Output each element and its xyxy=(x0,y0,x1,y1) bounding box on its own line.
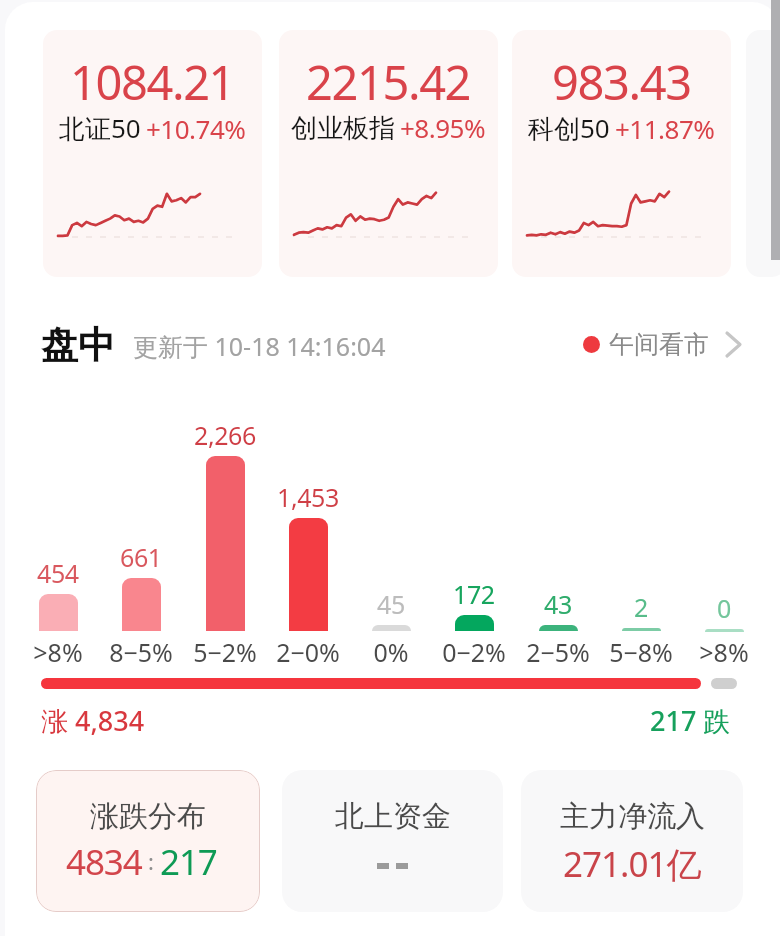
staticText: >8% xyxy=(16,635,100,669)
staticText: : xyxy=(148,846,154,876)
staticText: 45 xyxy=(377,587,405,621)
button[interactable]: 983.43 xyxy=(512,30,731,277)
staticText: 454 xyxy=(37,556,79,590)
staticText: 科创50 xyxy=(528,110,610,146)
staticText: 217 xyxy=(160,838,217,886)
staticText: +10.74% xyxy=(146,111,246,146)
staticText: 涨跌分布 xyxy=(90,798,206,835)
button[interactable]: 涨跌分布 xyxy=(36,770,260,912)
staticText: 4834 xyxy=(66,838,142,886)
staticText: 5−2% xyxy=(183,635,267,669)
button[interactable]: 午间看市 xyxy=(583,329,741,360)
staticText: 1084.21 xyxy=(70,50,235,114)
staticText: 主力净流入 xyxy=(560,798,705,835)
staticText: 43 xyxy=(544,587,572,621)
staticText: 0 xyxy=(717,591,731,625)
staticText: 北证50 xyxy=(59,110,141,146)
staticText: 172 xyxy=(453,577,495,611)
staticText: 217 跌 xyxy=(650,702,731,739)
staticText: 1,453 xyxy=(277,480,339,514)
staticText: 983.43 xyxy=(552,50,691,114)
staticText: 2215.42 xyxy=(306,50,471,114)
button[interactable]: 1084.21 xyxy=(43,30,262,277)
staticText: >8% xyxy=(682,635,766,669)
staticText: 2−5% xyxy=(516,635,600,669)
staticText: 2,266 xyxy=(194,418,256,452)
staticText: 2 xyxy=(634,590,648,624)
staticText: 更新于 10-18 14:16:04 xyxy=(133,329,386,363)
staticText: 0% xyxy=(349,635,433,669)
button[interactable]: 2215.42 xyxy=(279,30,498,277)
staticText: 创业板指 xyxy=(291,112,395,145)
staticText: +11.87% xyxy=(615,111,715,146)
staticText: 涨 4,834 xyxy=(41,702,145,739)
staticText: 2−0% xyxy=(266,635,350,669)
button[interactable]: 主力净流入 xyxy=(521,770,743,912)
staticText: 盘中 xyxy=(41,322,115,369)
button[interactable]: 北上资金 xyxy=(282,770,503,912)
staticText: +8.95% xyxy=(400,110,486,145)
staticText: 北上资金 xyxy=(335,798,451,835)
staticText: 8−5% xyxy=(99,635,183,669)
staticText: 661 xyxy=(120,540,162,574)
staticText: 271.01亿 xyxy=(563,840,701,888)
staticText: 0−2% xyxy=(432,635,516,669)
staticText: 5−8% xyxy=(599,635,683,669)
staticText: 午间看市 xyxy=(609,329,709,360)
